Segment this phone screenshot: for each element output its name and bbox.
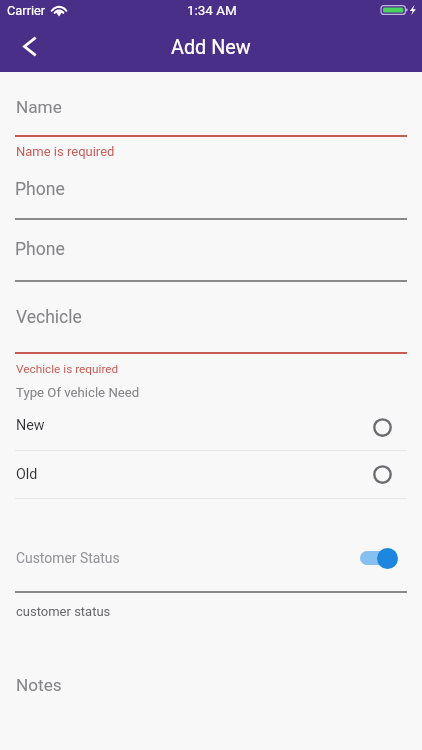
staticText: Vechicle is required	[16, 362, 119, 376]
button[interactable]: Old	[0, 450, 422, 498]
staticText: Old	[16, 466, 38, 483]
button[interactable]: Name	[15, 88, 407, 136]
staticText: Phone	[15, 179, 65, 200]
staticText: Type Of vehicle Need	[16, 385, 140, 400]
staticText: Name	[16, 97, 62, 117]
staticText: Name is required	[16, 144, 115, 159]
button[interactable]: Customer Status	[0, 538, 422, 578]
staticText: customer status	[16, 604, 111, 619]
button[interactable]: New	[0, 401, 422, 449]
button[interactable]: Phone	[15, 170, 407, 218]
staticText: 1:34 AM	[187, 3, 237, 19]
button[interactable]: Notes	[15, 666, 407, 716]
staticText: New	[16, 417, 45, 434]
staticText: Carrier	[7, 3, 46, 18]
staticText: Add New	[171, 36, 251, 59]
button[interactable]: Vechicle	[15, 296, 407, 352]
staticText: Customer Status	[16, 550, 120, 566]
button[interactable]: Back	[6, 24, 52, 70]
staticText: Notes	[16, 675, 62, 695]
staticText: Phone	[15, 239, 65, 260]
button[interactable]: Phone	[15, 230, 407, 280]
staticText: Vechicle	[16, 307, 82, 328]
